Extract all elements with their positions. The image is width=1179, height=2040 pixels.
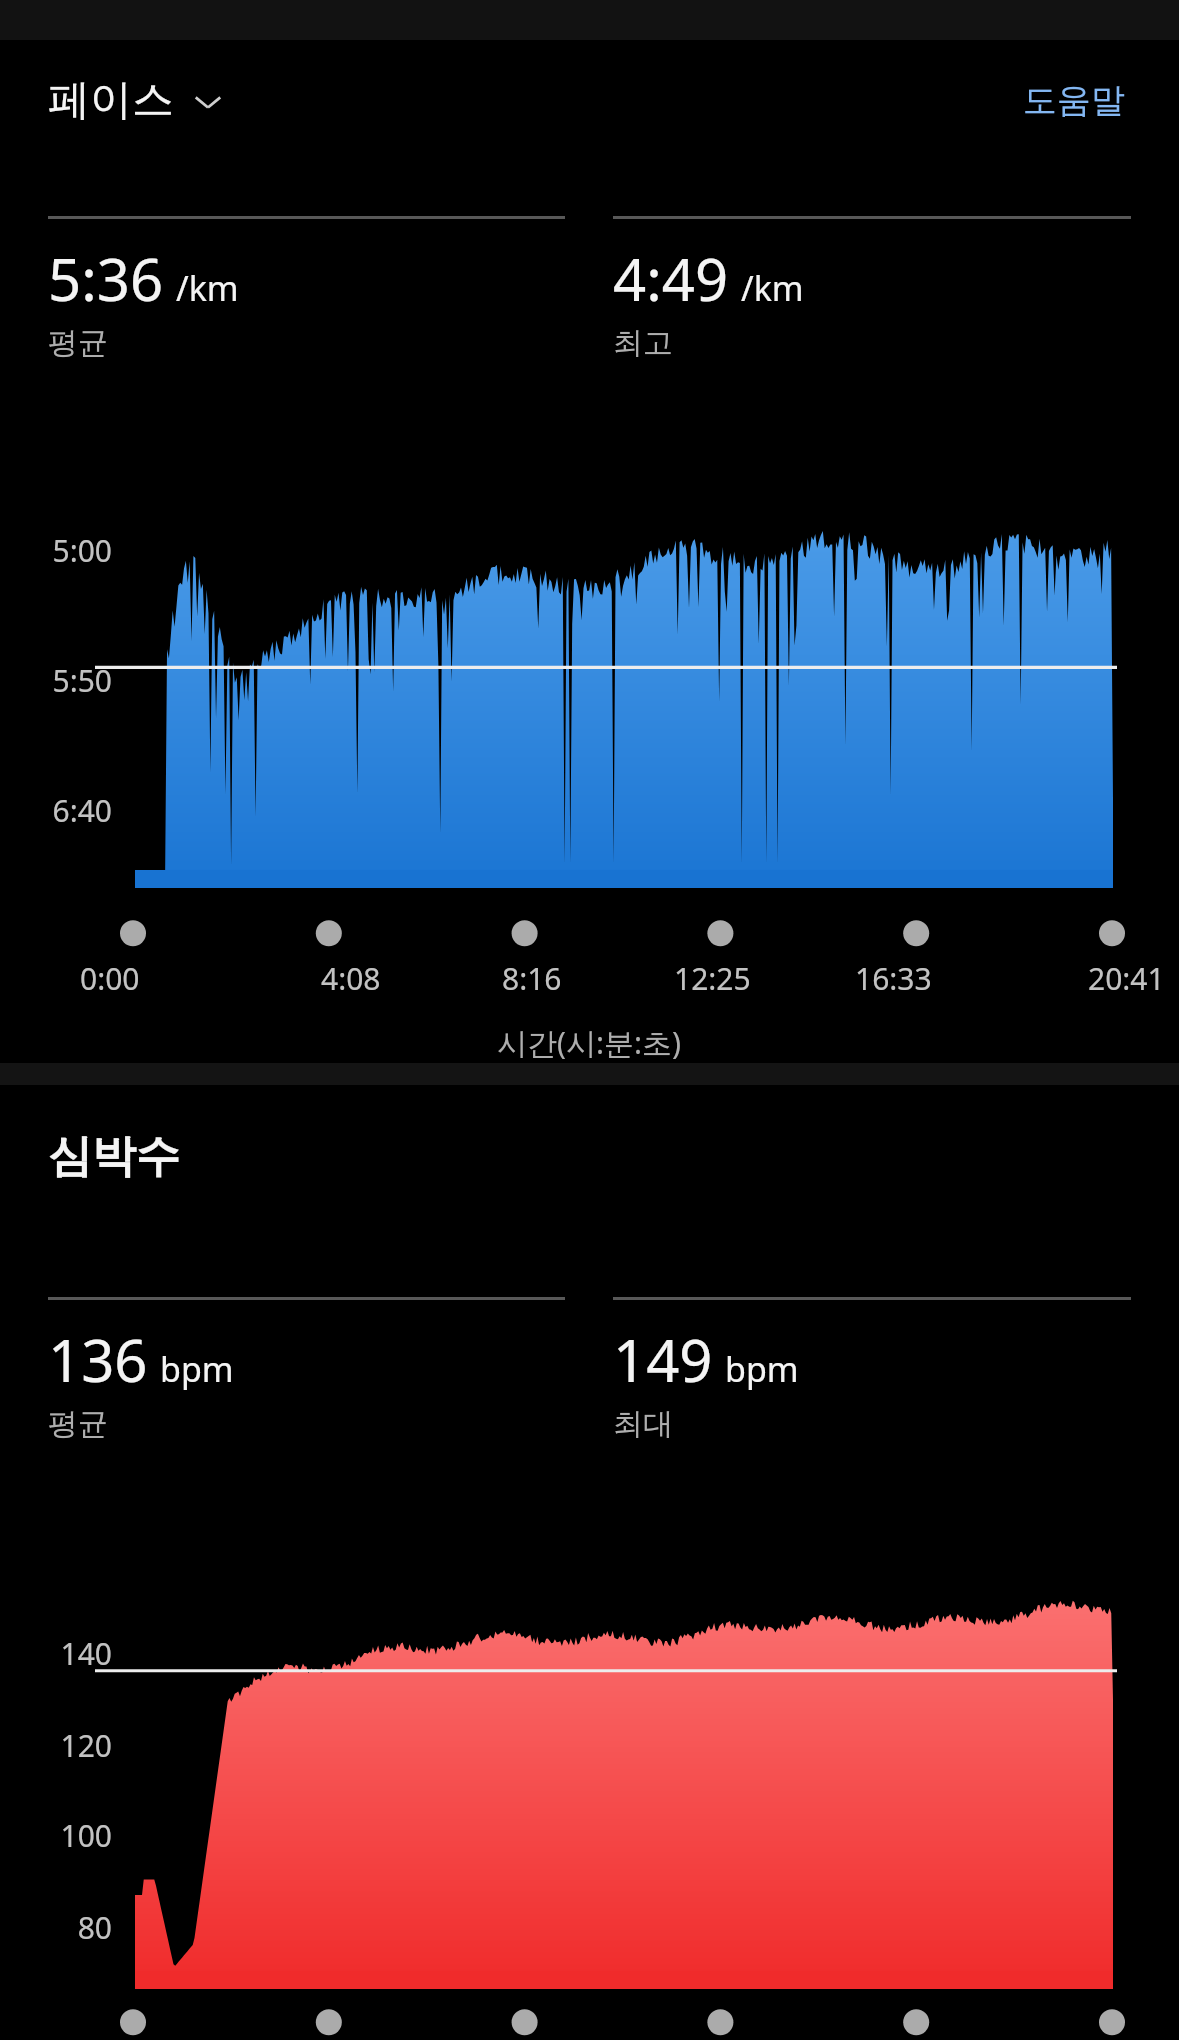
staticText: 136 — [48, 1320, 148, 1399]
staticText: 5:50 — [0, 660, 112, 701]
staticText: 20:41 — [1088, 958, 1165, 999]
staticText: 시간(시:분:초) — [497, 1022, 682, 1063]
staticText: /km — [741, 265, 804, 311]
staticText: /km — [176, 265, 239, 311]
staticText: 8:16 — [502, 958, 562, 999]
button[interactable]: 136 — [48, 1297, 565, 1443]
button[interactable]: 149 — [613, 1297, 1131, 1443]
button[interactable]: 5:36 — [48, 216, 565, 362]
staticText: 최대 — [613, 1405, 673, 1443]
button[interactable]: 심박수 — [48, 1129, 180, 1184]
staticText: 5:36 — [48, 239, 164, 318]
staticText: 120 — [0, 1725, 112, 1766]
staticText: bpm — [160, 1346, 234, 1392]
staticText: 최고 — [613, 324, 673, 362]
staticText: 평균 — [48, 1405, 108, 1443]
staticText: 심박수 — [48, 1129, 180, 1184]
staticText: 페이스 — [48, 74, 174, 127]
other: Change metric — [190, 83, 226, 119]
staticText: 149 — [613, 1320, 713, 1399]
staticText: 평균 — [48, 324, 108, 362]
staticText: 4:08 — [321, 958, 381, 999]
staticText: bpm — [725, 1346, 799, 1392]
staticText: 80 — [0, 1907, 112, 1948]
button[interactable]: 도움말 — [1013, 69, 1135, 132]
staticText: 16:33 — [855, 958, 932, 999]
button[interactable]: 4:49 — [613, 216, 1131, 362]
staticText: 5:00 — [0, 530, 112, 571]
staticText: 140 — [0, 1633, 112, 1674]
button[interactable]: 페이스 — [44, 64, 230, 137]
staticText: 4:49 — [613, 239, 729, 318]
staticText: 6:40 — [0, 790, 112, 831]
staticText: 12:25 — [674, 958, 751, 999]
staticText: 도움말 — [1023, 79, 1125, 122]
staticText: 0:00 — [80, 958, 140, 999]
staticText: 100 — [0, 1815, 112, 1856]
